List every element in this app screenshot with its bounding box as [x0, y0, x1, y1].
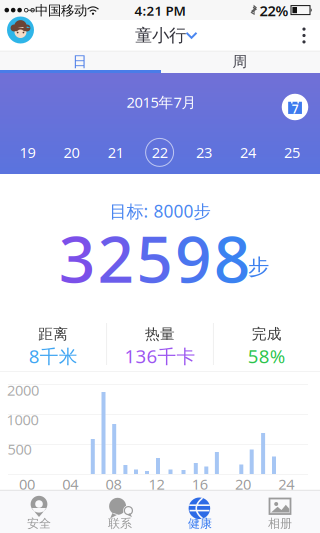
staticText: 联系	[108, 516, 132, 531]
staticText: 2015年7月	[126, 92, 196, 112]
staticText: 24	[240, 143, 256, 162]
staticText: 安全	[27, 516, 51, 531]
button[interactable]: 19	[9, 136, 45, 168]
staticText: 136千卡	[124, 344, 195, 368]
staticText: 5	[136, 215, 173, 300]
staticText: 8	[214, 215, 251, 300]
staticText: 8千米	[29, 344, 78, 368]
button[interactable]: 安全	[0, 490, 80, 533]
staticText: 08	[105, 474, 121, 494]
staticText: 距离	[38, 325, 68, 343]
staticText: 完成	[252, 325, 282, 343]
staticText: 24	[278, 474, 294, 494]
staticText: 23	[196, 143, 212, 162]
button[interactable]: 健康	[160, 490, 240, 533]
staticText: 22	[152, 143, 168, 162]
button[interactable]: 童小行	[136, 20, 200, 51]
staticText: 4:21 PM	[134, 2, 185, 19]
button[interactable]: More	[289, 20, 319, 50]
staticText: 1000	[6, 410, 38, 429]
staticText: 健康	[188, 516, 212, 531]
staticText: 日	[72, 52, 87, 70]
staticText: 目标: 8000步	[109, 199, 210, 222]
staticText: 2	[98, 215, 135, 300]
staticText: 20	[64, 143, 80, 162]
button[interactable]: 相册	[240, 490, 320, 533]
staticText: 步	[248, 254, 269, 280]
staticText: 25	[284, 143, 300, 162]
button[interactable]: 22	[142, 136, 178, 168]
staticText: 周	[232, 52, 247, 70]
staticText: 500	[7, 439, 31, 459]
staticText: 2000	[7, 380, 39, 400]
staticText: 20	[235, 474, 251, 494]
staticText: 7	[292, 101, 299, 117]
button[interactable]: Profile	[7, 16, 34, 43]
staticText: 3	[59, 215, 96, 300]
button[interactable]: 21	[98, 136, 134, 168]
staticText: 热量	[145, 325, 175, 343]
button[interactable]: 20	[54, 136, 90, 168]
button[interactable]: 23	[186, 136, 222, 168]
staticText: 00	[19, 474, 35, 494]
staticText: 58%	[248, 344, 286, 368]
button[interactable]: 周	[160, 52, 320, 70]
button[interactable]: 联系	[80, 490, 160, 533]
staticText: 9	[175, 215, 212, 300]
staticText: 22%	[259, 1, 288, 20]
staticText: 04	[62, 474, 78, 494]
staticText: 16	[192, 474, 208, 494]
staticText: 中国移动	[35, 2, 87, 19]
staticText: 相册	[268, 516, 292, 531]
button[interactable]: 日	[0, 52, 160, 70]
button[interactable]: Choose date	[282, 94, 308, 120]
button[interactable]: 25	[274, 136, 310, 168]
staticText: 19	[19, 143, 35, 162]
staticText: 12	[149, 474, 165, 494]
staticText: 21	[108, 143, 124, 162]
button[interactable]: 24	[230, 136, 266, 168]
staticText: 童小行	[135, 25, 186, 46]
